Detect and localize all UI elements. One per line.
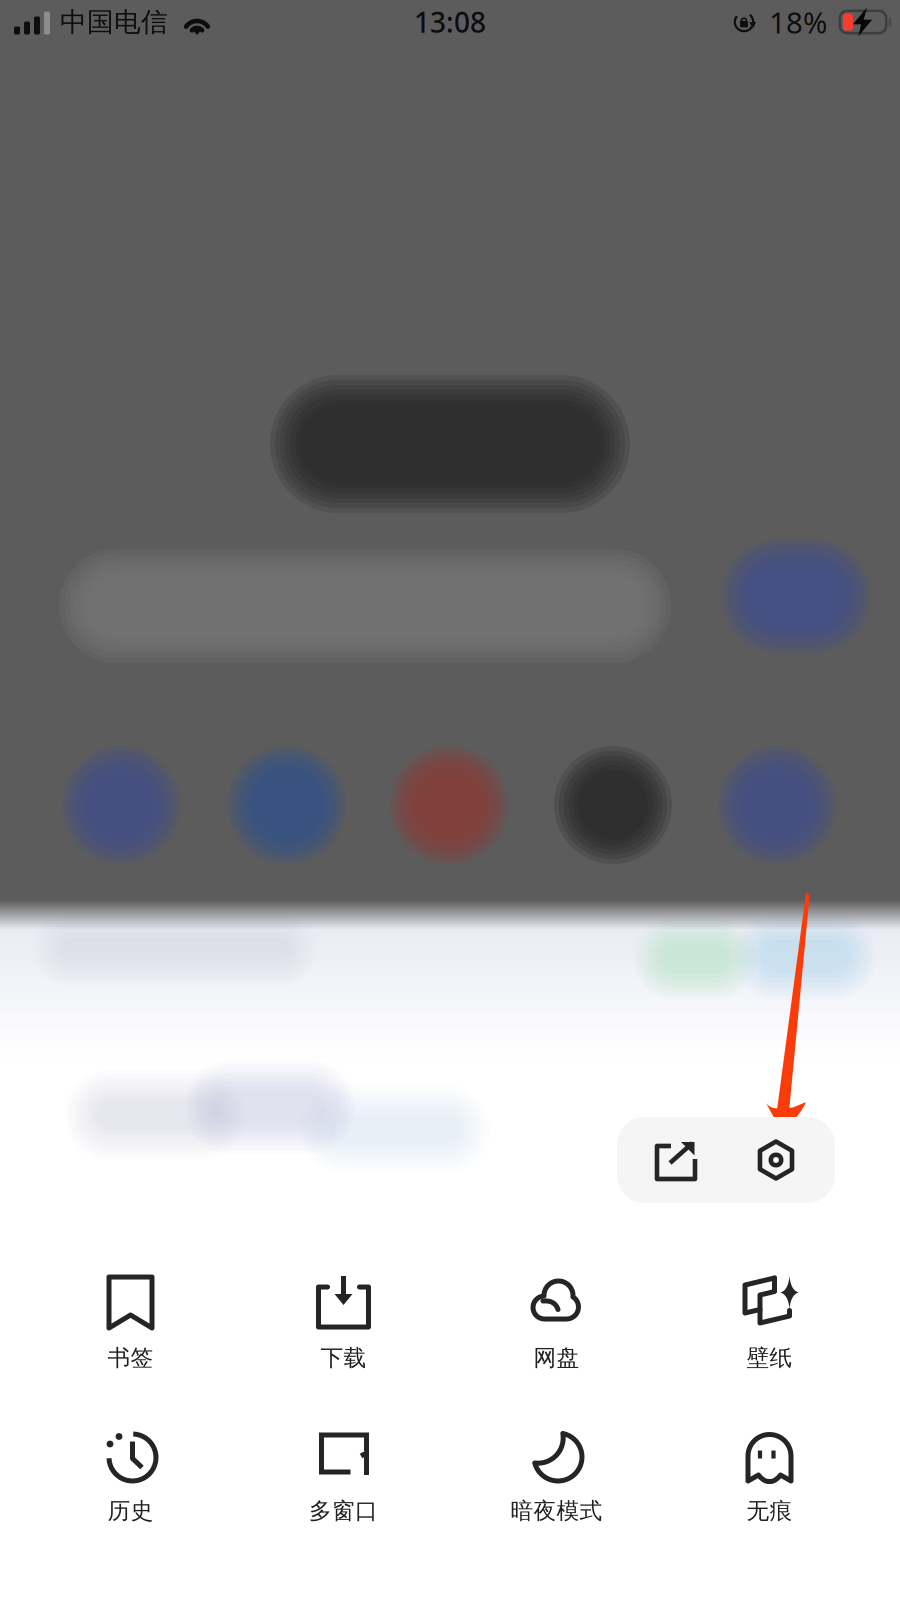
staticText: 壁纸 xyxy=(746,1344,792,1372)
button[interactable]: 历史 xyxy=(24,1427,237,1562)
button[interactable]: 网盘 xyxy=(450,1274,663,1409)
staticText: 无痕 xyxy=(746,1497,792,1525)
staticText: 多窗口 xyxy=(309,1497,378,1525)
staticText: 网盘 xyxy=(533,1344,579,1372)
staticText: 下载 xyxy=(320,1344,366,1372)
button[interactable]: 书签 xyxy=(24,1274,237,1409)
button[interactable]: 暗夜模式 xyxy=(450,1427,663,1562)
staticText: 18% xyxy=(769,2,827,41)
button[interactable]: 多窗口 xyxy=(237,1427,450,1562)
staticText: 13:08 xyxy=(414,3,486,41)
staticText: 书签 xyxy=(107,1344,153,1372)
staticText: 历史 xyxy=(107,1497,153,1525)
staticText: 中国电信 xyxy=(60,6,168,38)
staticText: 暗夜模式 xyxy=(510,1497,602,1525)
button[interactable]: Settings xyxy=(754,1138,798,1182)
button[interactable]: 壁纸 xyxy=(663,1274,876,1409)
button[interactable]: 下载 xyxy=(237,1274,450,1409)
button[interactable]: 无痕 xyxy=(663,1427,876,1562)
button[interactable]: Open in browser xyxy=(654,1138,698,1182)
